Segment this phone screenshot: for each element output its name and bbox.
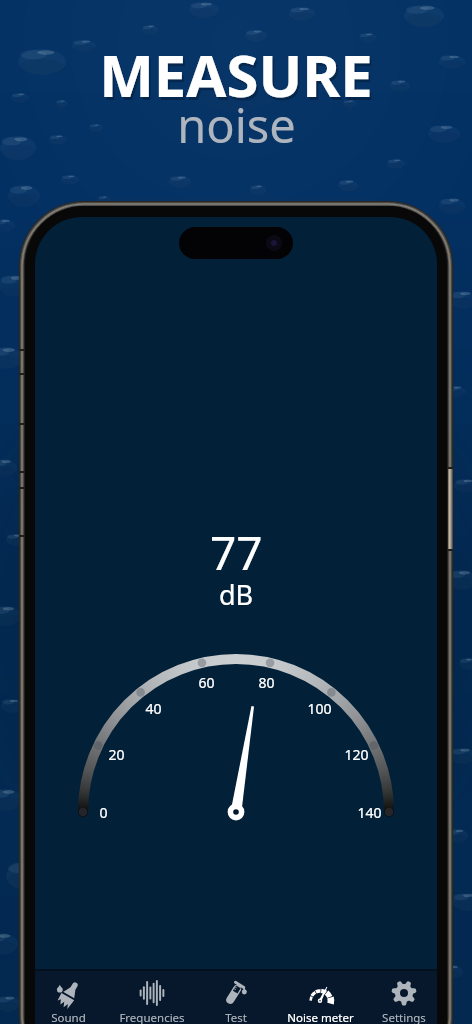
staticText: 0	[99, 803, 108, 822]
button[interactable]: Test	[194, 971, 278, 1024]
other: Test	[223, 980, 249, 1006]
staticText: Frequencies	[119, 1010, 185, 1024]
staticText: noise	[177, 93, 296, 157]
button[interactable]: Noise meter	[278, 971, 362, 1024]
other: Noise meter	[307, 980, 333, 1006]
other: Sound	[55, 980, 81, 1006]
staticText: MEASURE	[101, 38, 375, 117]
staticText: 140	[357, 803, 382, 822]
button[interactable]: Settings	[362, 971, 437, 1024]
staticText: 40	[145, 699, 162, 718]
staticText: Noise meter	[287, 1010, 354, 1024]
staticText: 100	[307, 699, 332, 718]
staticText: 20	[108, 745, 125, 764]
staticText: 60	[198, 673, 215, 692]
button[interactable]: Sound	[35, 971, 110, 1024]
staticText: 80	[258, 673, 275, 692]
staticText: Sound	[51, 1010, 86, 1024]
staticText: dB	[219, 576, 254, 613]
staticText: Settings	[382, 1010, 426, 1024]
other: Frequencies	[139, 980, 165, 1006]
staticText: Test	[225, 1010, 247, 1024]
staticText: 77	[210, 521, 263, 584]
staticText: 120	[344, 745, 369, 764]
staticText: MEASURE	[99, 35, 373, 114]
button[interactable]: Frequencies	[110, 971, 194, 1024]
other: Settings	[391, 980, 417, 1006]
